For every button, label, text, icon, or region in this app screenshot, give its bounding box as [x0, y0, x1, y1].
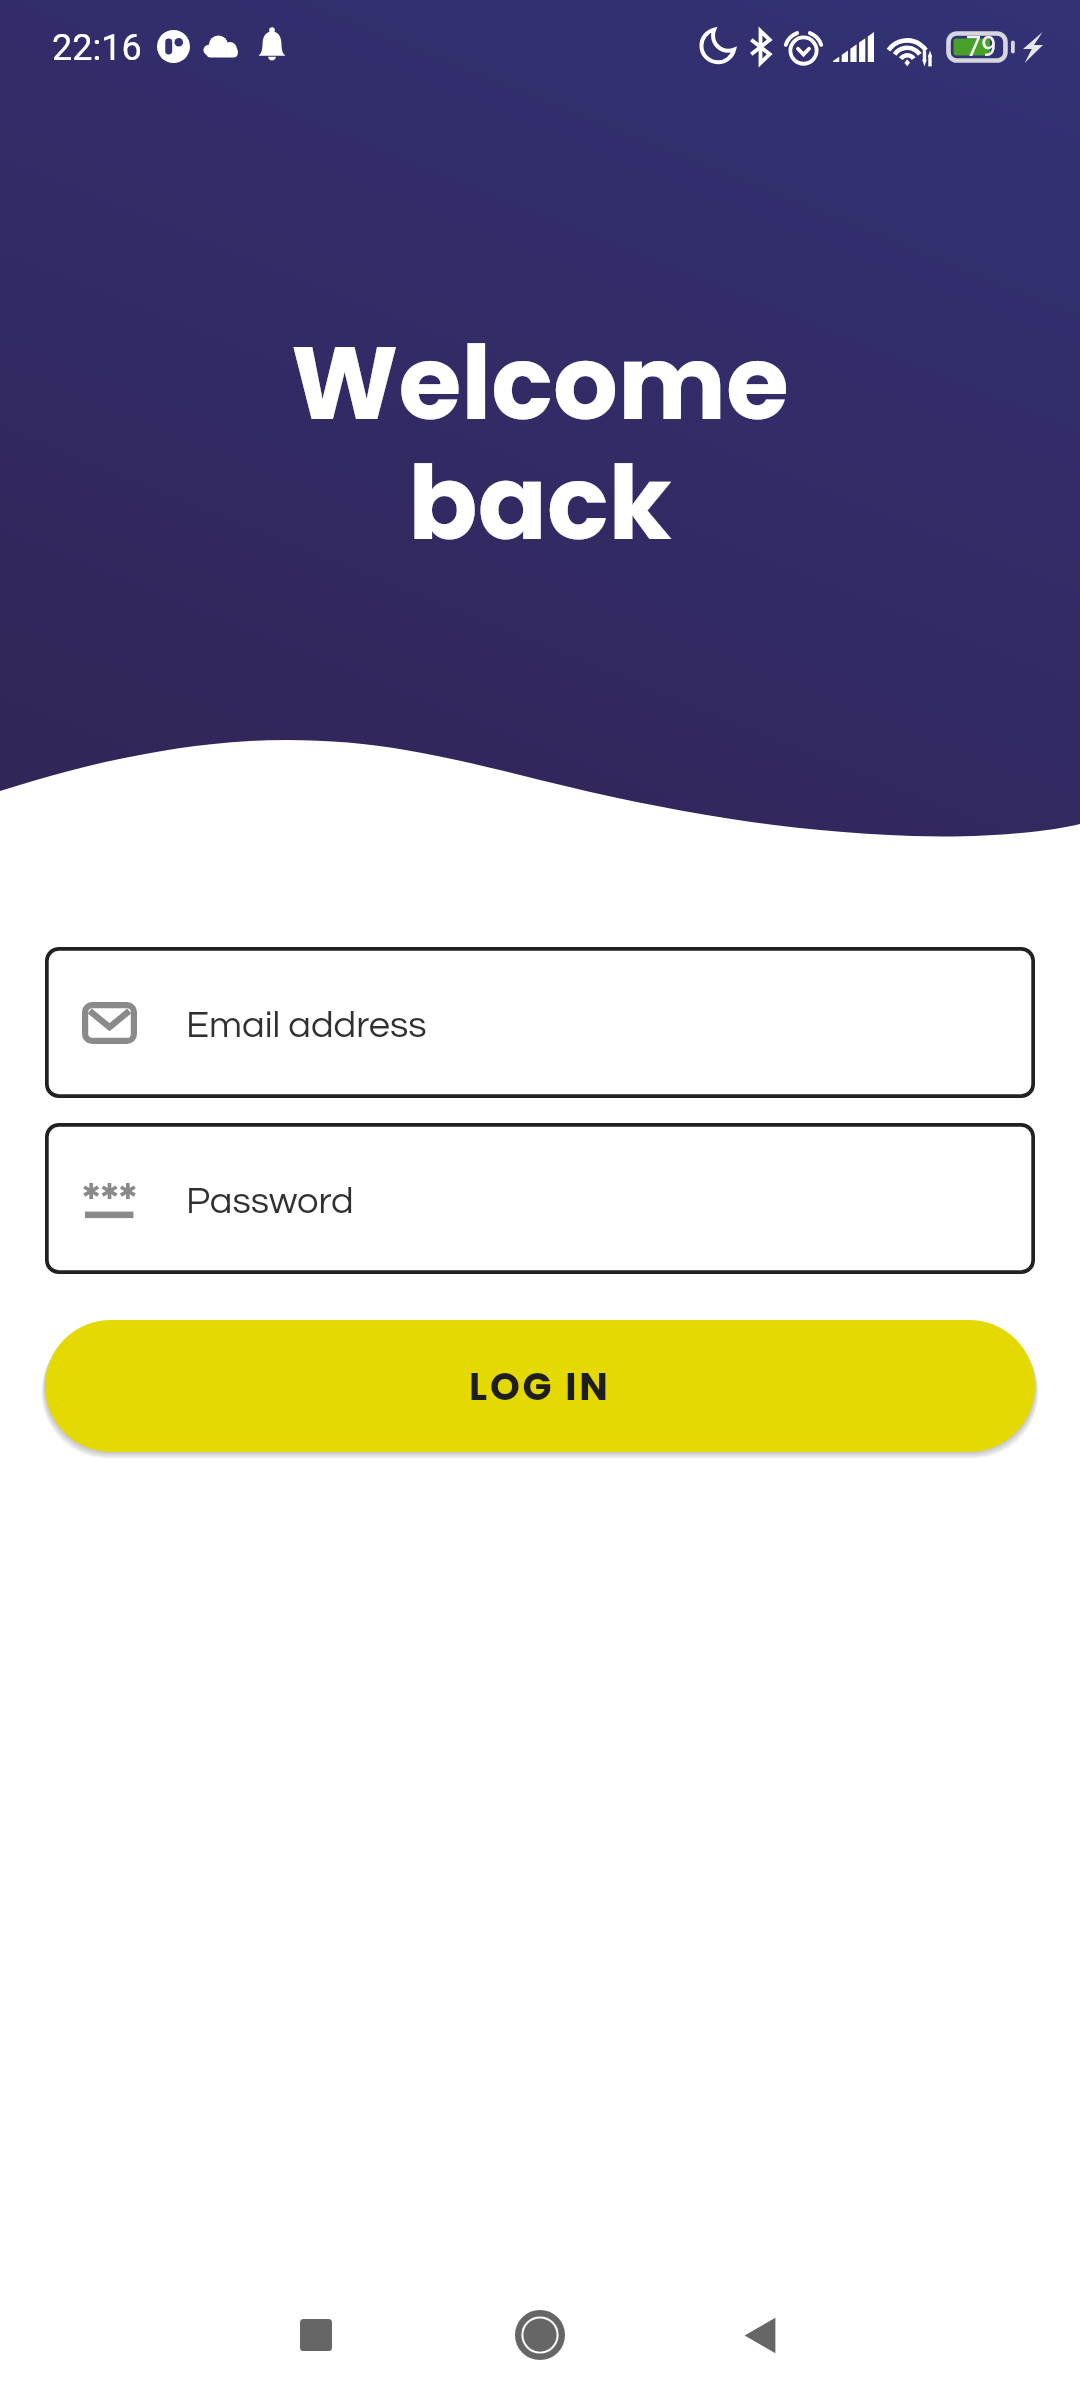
staticText: Email address — [186, 1006, 427, 1045]
button[interactable]: LOG IN — [45, 1320, 1035, 1452]
button[interactable]: Recent apps — [226, 2270, 406, 2400]
staticText: Welcome back — [291, 312, 789, 575]
button[interactable]: Email address — [45, 947, 1035, 1098]
button[interactable]: Home — [450, 2270, 630, 2400]
button[interactable]: Back — [670, 2270, 850, 2400]
button[interactable]: Password — [45, 1123, 1035, 1274]
staticText: 79 — [966, 31, 997, 63]
staticText: Password — [186, 1182, 354, 1221]
staticText: LOG IN — [469, 1360, 611, 1413]
staticText: 22:16 — [52, 27, 142, 69]
